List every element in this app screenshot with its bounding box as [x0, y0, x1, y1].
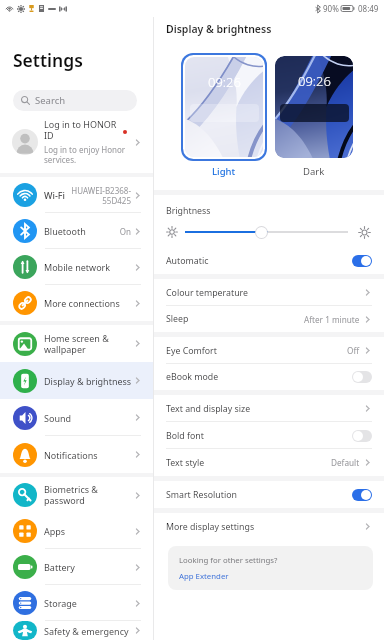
staticText: Search [35, 94, 66, 107]
button[interactable]: Log in to HONOR ID [0, 111, 153, 173]
staticText: Settings [13, 48, 83, 72]
staticText: 90% [323, 3, 339, 14]
staticText: Default [331, 457, 360, 468]
button[interactable]: 09:26 [275, 56, 353, 158]
button[interactable]: Eye Comfort [154, 337, 384, 364]
button[interactable]: Apps [0, 513, 153, 549]
button[interactable]: 09:26 [185, 57, 263, 157]
staticText: Battery [44, 561, 75, 573]
staticText: Safety & emergency [44, 625, 129, 637]
staticText: Brightness [166, 205, 211, 217]
button[interactable]: More connections [0, 285, 153, 321]
button[interactable]: More display settings [154, 513, 384, 540]
button[interactable]: Sleep [154, 306, 384, 332]
button[interactable]: Text style [154, 449, 384, 476]
staticText: HUAWEI-B2368- 55D425 [71, 185, 131, 206]
staticText: After 1 minute [304, 314, 360, 325]
button[interactable]: Biometrics & password [0, 477, 153, 513]
staticText: Mobile network [44, 261, 111, 273]
staticText: Sleep [166, 313, 189, 325]
button[interactable]: App Extender [179, 571, 229, 582]
button[interactable]: Storage [0, 585, 153, 621]
button[interactable]: Home screen & wallpaper [0, 325, 153, 362]
staticText: Display & brightness [44, 375, 132, 387]
staticText: On [119, 226, 131, 237]
staticText: Bold font [166, 430, 204, 442]
staticText: Eye Comfort [166, 345, 217, 357]
staticText: 09:26 [298, 72, 331, 90]
button[interactable]: Automatic [154, 247, 384, 274]
staticText: Smart Resolution [166, 489, 237, 501]
staticText: Storage [44, 597, 77, 609]
staticText: Looking for other settings? [179, 555, 278, 566]
button[interactable]: Wi-Fi [0, 177, 153, 213]
staticText: More display settings [166, 521, 255, 533]
staticText: Light [212, 165, 236, 178]
staticText: eBook mode [166, 371, 219, 383]
staticText: Sound [44, 412, 72, 424]
staticText: Colour temperature [166, 287, 248, 299]
button[interactable]: eBook mode [154, 364, 384, 390]
staticText: Off [347, 345, 360, 356]
button[interactable]: Colour temperature [154, 279, 384, 306]
staticText: Wi-Fi [44, 189, 65, 201]
staticText: Dark [303, 165, 325, 178]
staticText: 08:49 [358, 3, 379, 14]
button[interactable]: Search [13, 90, 137, 111]
button[interactable]: Notifications [0, 436, 153, 473]
button[interactable]: Text and display size [154, 395, 384, 422]
staticText: Home screen & wallpaper [44, 332, 109, 356]
button[interactable]: Bold font [154, 422, 384, 449]
button[interactable]: Display & brightness [0, 362, 153, 399]
button[interactable]: Bluetooth [0, 213, 153, 249]
button[interactable]: Mobile network [0, 249, 153, 285]
staticText: Log in to HONOR ID [44, 118, 117, 142]
staticText: Biometrics & password [44, 483, 98, 507]
button[interactable]: Safety & emergency [0, 621, 153, 640]
staticText: Automatic [166, 255, 209, 267]
staticText: More connections [44, 297, 120, 309]
staticText: Apps [44, 525, 66, 537]
staticText: Text style [166, 457, 205, 469]
staticText: Log in to enjoy Honor services. [44, 144, 126, 166]
button[interactable]: Smart Resolution [154, 481, 384, 508]
staticText: Notifications [44, 449, 98, 461]
staticText: Text and display size [166, 403, 251, 415]
staticText: 09:26 [208, 73, 241, 91]
button[interactable]: Sound [0, 399, 153, 436]
staticText: Bluetooth [44, 225, 86, 237]
button[interactable]: Battery [0, 549, 153, 585]
staticText: Display & brightness [166, 22, 272, 36]
